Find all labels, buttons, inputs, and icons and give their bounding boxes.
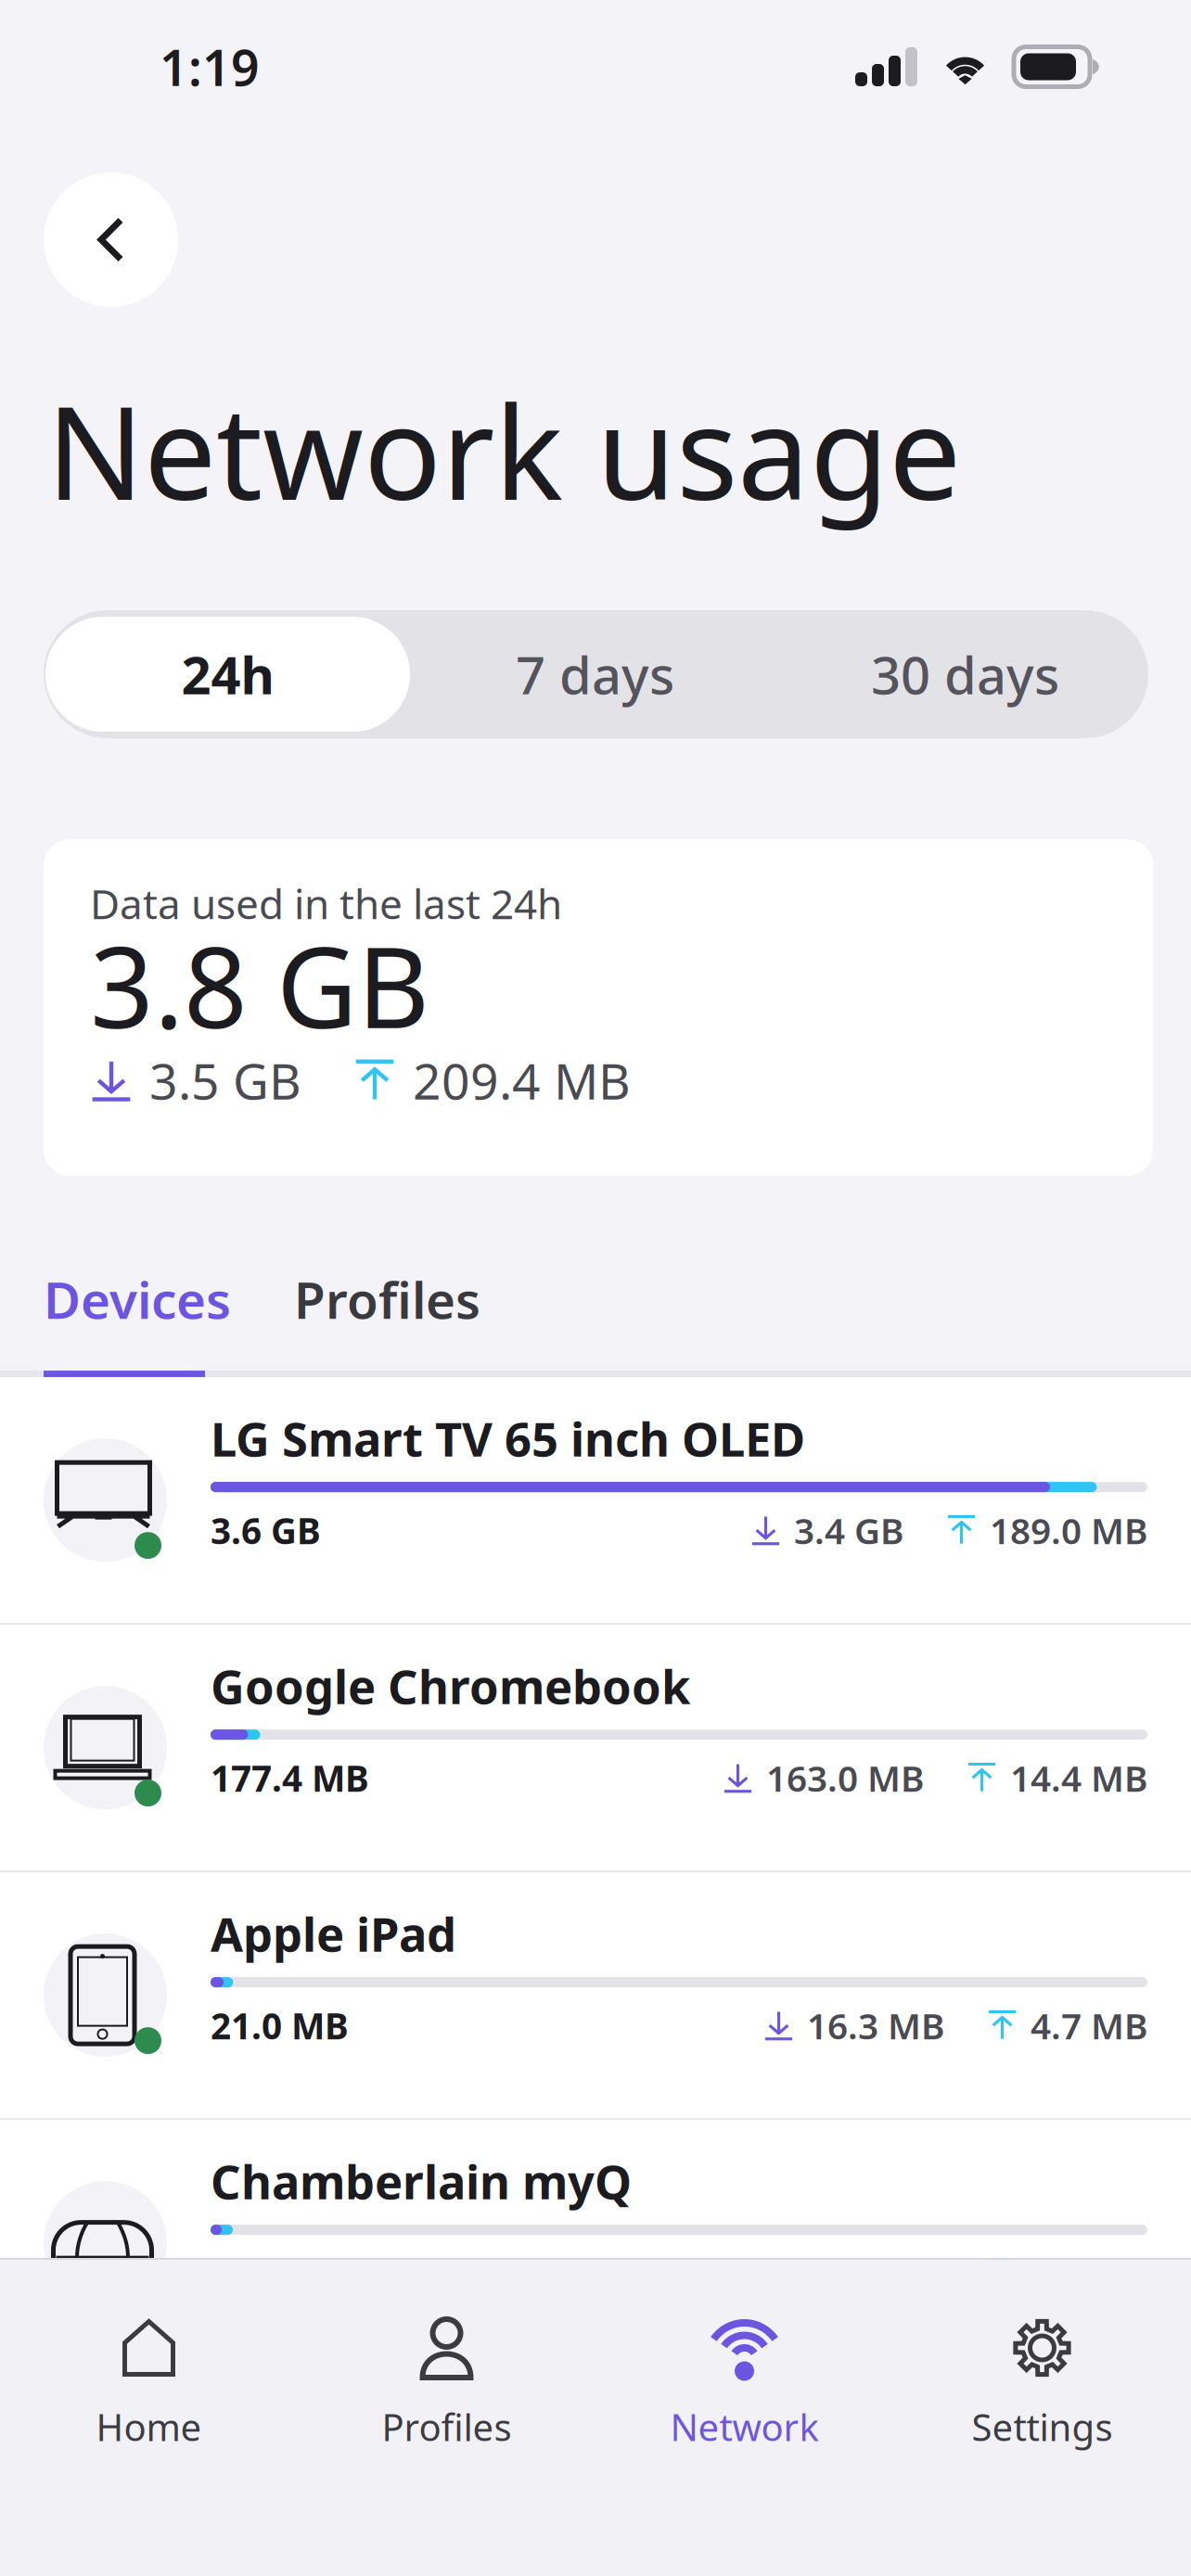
staticText: Data used in the last 24h [90, 876, 562, 930]
button[interactable]: Profiles [298, 2260, 595, 2576]
staticText: 14.4 MB [1010, 1754, 1147, 1802]
staticText: 7 days [516, 640, 674, 709]
staticText: 3.6 GB [211, 1506, 321, 1554]
button[interactable]: Network [595, 2260, 893, 2576]
button[interactable]: Profiles [294, 1273, 480, 1325]
staticText: 1.5 MB [1031, 2249, 1147, 2297]
staticText: 30 days [871, 640, 1059, 709]
staticText: Settings [972, 2402, 1113, 2451]
staticText: 3.4 GB [794, 1506, 903, 1554]
staticText: Apple iPad [211, 1902, 456, 1965]
button[interactable]: Settings [893, 2260, 1191, 2576]
staticText: 209.4 MB [413, 1048, 631, 1113]
staticText: 8.0 MB [827, 2249, 944, 2297]
staticText: 189.0 MB [990, 1506, 1147, 1554]
staticText: 177.4 MB [211, 1754, 369, 1802]
button[interactable]: Devices [44, 1273, 231, 1325]
staticText: 163.0 MB [766, 1754, 924, 1802]
staticText: Profiles [294, 1266, 480, 1333]
staticText: Network [670, 2402, 819, 2451]
staticText: LG Smart TV 65 inch OLED [211, 1407, 805, 1470]
button[interactable]: 7 days [410, 617, 780, 732]
staticText: Devices [44, 1266, 231, 1333]
button[interactable]: 24h [45, 617, 410, 732]
button[interactable]: Home [0, 2260, 298, 2576]
staticText: 3.8 GB [90, 911, 429, 1059]
staticText: Home [96, 2402, 202, 2451]
staticText: 4.7 MB [1031, 2002, 1147, 2049]
staticText: Network usage [46, 364, 961, 535]
staticText: Profiles [382, 2402, 512, 2451]
button[interactable]: Back [44, 172, 178, 307]
staticText: 9.5 MB [211, 2249, 328, 2297]
button[interactable]: Apple iPad [0, 1872, 1191, 2118]
staticText: 16.3 MB [807, 2002, 944, 2049]
button[interactable]: 30 days [780, 617, 1150, 732]
staticText: 24h [181, 640, 274, 709]
staticText: 1:19 [160, 34, 260, 100]
button[interactable]: Chamberlain myQ [0, 2120, 1191, 2366]
button[interactable]: LG Smart TV 65 inch OLED [0, 1377, 1191, 1623]
staticText: 21.0 MB [211, 2002, 349, 2049]
staticText: Google Chromebook [211, 1655, 690, 1717]
button[interactable]: Google Chromebook [0, 1625, 1191, 1870]
staticText: 3.5 GB [149, 1048, 301, 1113]
staticText: Chamberlain myQ [211, 2150, 632, 2212]
